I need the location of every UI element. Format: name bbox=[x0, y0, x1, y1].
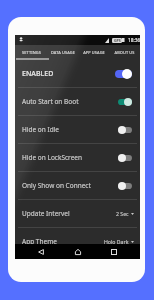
button[interactable]: Hide on LockScreen bbox=[15, 144, 140, 171]
staticText: 18:36 bbox=[128, 37, 141, 44]
button[interactable]: Home bbox=[68, 244, 88, 259]
staticText: Hide on Idle bbox=[22, 125, 118, 134]
staticText: 2 Sec bbox=[116, 210, 129, 217]
button[interactable]: App Theme bbox=[15, 228, 140, 255]
staticText: ABOUT US bbox=[114, 50, 135, 55]
staticText: ENABLED bbox=[22, 69, 115, 79]
button[interactable]: Hide on Idle bbox=[15, 116, 140, 143]
staticText: DATA USAGE bbox=[51, 50, 75, 55]
button[interactable]: SETTINGS bbox=[15, 45, 47, 58]
staticText: Holo Dark bbox=[104, 238, 129, 245]
button[interactable]: Back bbox=[31, 244, 51, 259]
staticText: Update Intervel bbox=[22, 209, 116, 218]
button[interactable]: Only Show on Connect bbox=[15, 172, 140, 199]
button[interactable]: ENABLED bbox=[15, 61, 140, 87]
staticText: SETTINGS bbox=[22, 50, 41, 55]
button[interactable]: DATA USAGE bbox=[47, 45, 78, 58]
staticText: APP USAGE bbox=[83, 50, 105, 55]
staticText: App Theme bbox=[22, 237, 104, 246]
button[interactable]: Recent apps bbox=[104, 244, 124, 259]
staticText: Only Show on Connect bbox=[22, 181, 118, 190]
staticText: GPS bbox=[114, 38, 121, 43]
button[interactable]: Update Intervel bbox=[15, 200, 140, 227]
button[interactable]: Auto Start on Boot bbox=[15, 88, 140, 115]
button[interactable]: ABOUT US bbox=[109, 45, 140, 58]
staticText: Auto Start on Boot bbox=[22, 97, 118, 106]
button[interactable]: APP USAGE bbox=[78, 45, 109, 58]
staticText: Hide on LockScreen bbox=[22, 153, 118, 162]
